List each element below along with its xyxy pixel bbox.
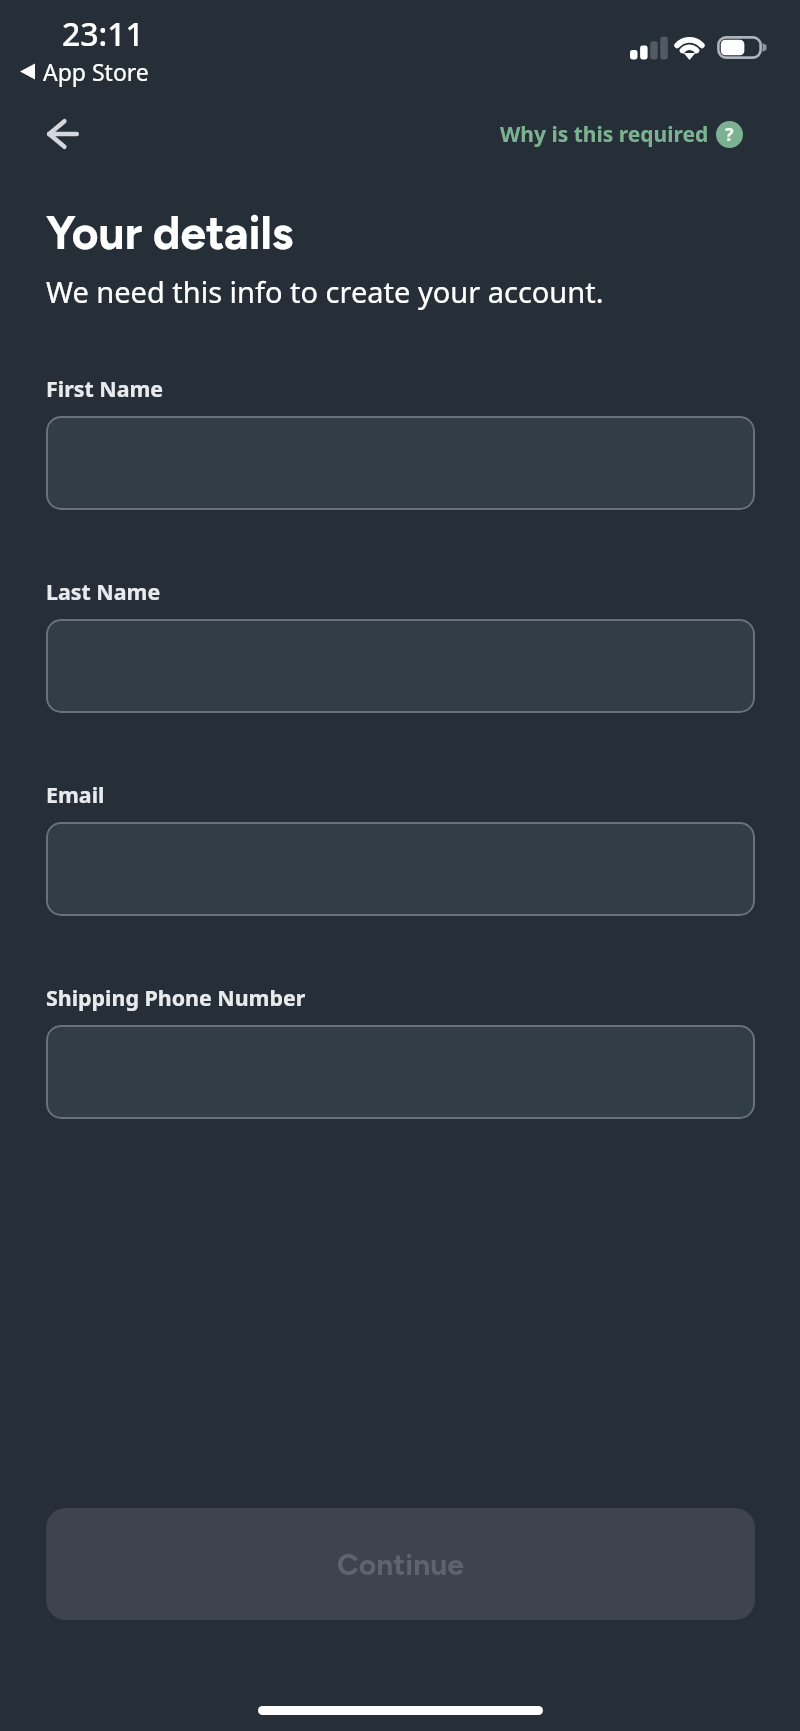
staticText: Shipping Phone Number	[46, 983, 306, 1012]
staticText: We need this info to create your account…	[46, 272, 604, 311]
button[interactable]: Why is this required	[500, 120, 743, 149]
staticText: 23:11	[62, 12, 144, 56]
staticText: Why is this required	[500, 120, 709, 149]
staticText: Email	[46, 780, 105, 809]
button[interactable]: Shipping Phone Number	[46, 1025, 755, 1119]
staticText: First Name	[46, 374, 164, 403]
button[interactable]: Last Name	[46, 619, 755, 713]
staticText: App Store	[43, 56, 149, 87]
staticText: ?	[725, 122, 734, 147]
staticText: Continue	[337, 1546, 464, 1582]
button[interactable]: Email	[46, 822, 755, 916]
button[interactable]: First Name	[46, 416, 755, 510]
staticText: Your details	[46, 205, 294, 260]
button[interactable]: Continue	[46, 1508, 755, 1620]
staticText: Last Name	[46, 577, 161, 606]
button[interactable]: Back	[31, 102, 95, 166]
